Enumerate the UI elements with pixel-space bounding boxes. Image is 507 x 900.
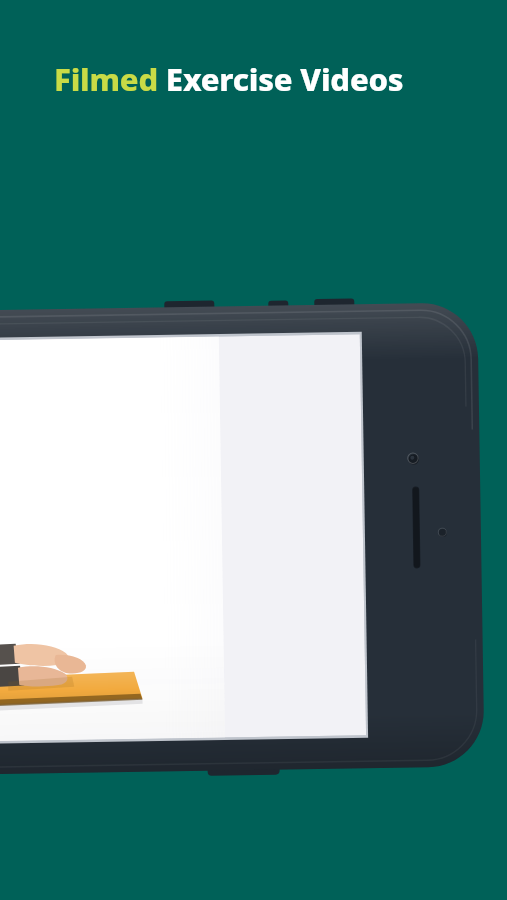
button[interactable]: Filmed Exercise Videos promotional scree…	[0, 0, 507, 900]
staticText: Filmed Exercise Videos	[54, 58, 404, 100]
